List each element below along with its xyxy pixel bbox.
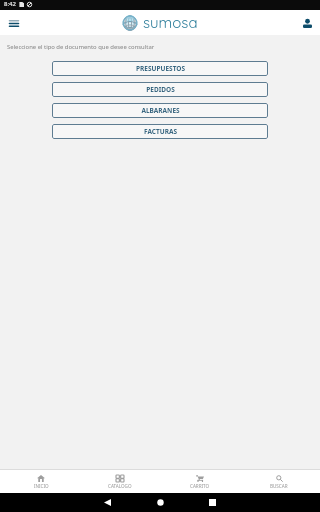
button[interactable]: FACTURAS [52,124,268,139]
button[interactable]: Menu [5,14,23,32]
staticText: 8:42 [4,0,16,8]
button[interactable]: PRESUPUESTOS [52,61,268,76]
staticText: PRESUPUESTOS [136,64,185,73]
staticText: PEDIDOS [146,85,175,94]
staticText: CATALOGO [108,483,132,489]
button[interactable]: CARRITO [161,470,239,493]
staticText: BUSCAR [270,483,288,489]
staticText: sumosa [143,13,198,32]
button[interactable]: Account [299,15,315,31]
staticText: Seleccione el tipo de documento que dese… [7,43,155,51]
staticText: CARRITO [190,483,210,489]
staticText: FACTURAS [144,127,177,136]
staticText: ALBARANES [141,106,180,115]
button[interactable]: BUSCAR [240,470,318,493]
button[interactable]: ALBARANES [52,103,268,118]
button[interactable]: PEDIDOS [52,82,268,97]
staticText: INICIO [34,483,49,489]
button[interactable]: CATALOGO [81,470,159,493]
button[interactable]: INICIO [2,470,80,493]
